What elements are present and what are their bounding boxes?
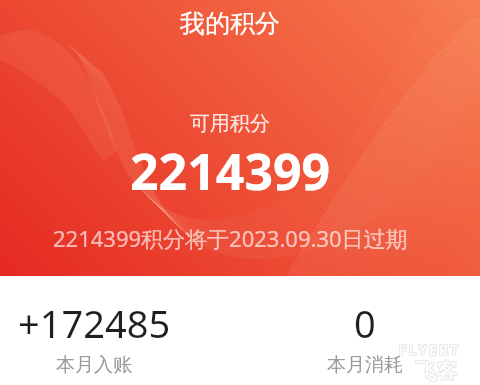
staticText: FLYERT — [400, 341, 462, 360]
staticText: 飞客 — [417, 358, 459, 384]
staticText: 飞客 — [416, 358, 458, 384]
staticText: FLYERT — [399, 341, 461, 360]
staticText: FLYERT — [399, 339, 461, 358]
staticText: FLYERT — [399, 340, 461, 359]
staticText: +172485 — [18, 297, 171, 349]
staticText: FLYERT — [400, 339, 462, 358]
staticText: 飞客 — [415, 357, 457, 383]
staticText: 2214399积分将于2023.09.30日过期 — [53, 223, 408, 253]
button[interactable]: +172485 — [4, 297, 184, 377]
staticText: 飞客 — [416, 359, 458, 385]
staticText: 飞客 — [417, 359, 459, 385]
button[interactable]: 0 — [275, 297, 455, 377]
staticText: 飞客 — [416, 357, 458, 383]
staticText: 飞客 — [415, 359, 457, 385]
staticText: 本月入账 — [56, 353, 132, 377]
staticText: FLYERT — [400, 340, 462, 359]
staticText: 2214399 — [130, 137, 331, 205]
staticText: FLYERT — [398, 339, 460, 358]
staticText: 可用积分 — [190, 111, 270, 136]
staticText: 本月消耗 — [327, 353, 403, 377]
staticText: 飞客 — [415, 358, 457, 384]
staticText: 飞客 — [417, 357, 459, 383]
staticText: FLYERT — [398, 341, 460, 360]
staticText: FLYERT — [398, 340, 460, 359]
staticText: 我的积分 — [180, 8, 280, 39]
staticText: 0 — [354, 297, 376, 349]
